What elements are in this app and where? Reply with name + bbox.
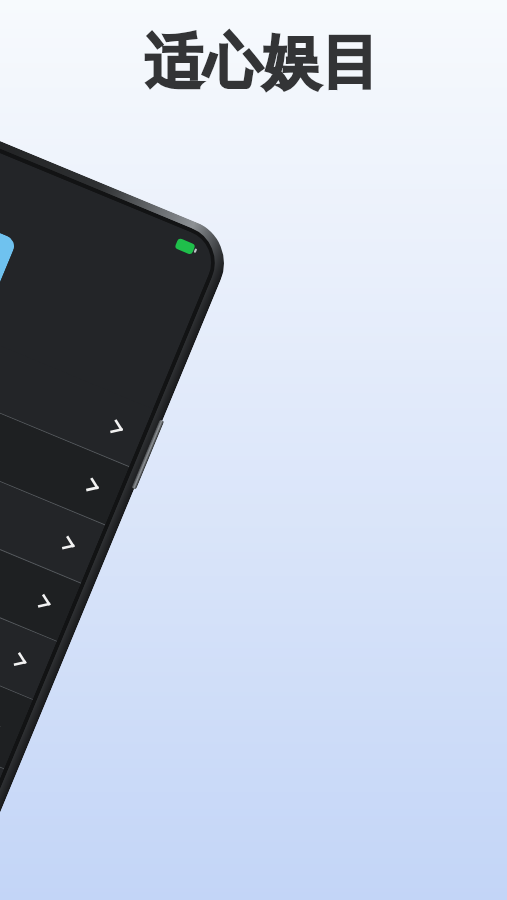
button[interactable]: 隐私设置 bbox=[0, 525, 57, 699]
staticText: 适心娱目 bbox=[144, 26, 380, 99]
button[interactable]: 深色模式 bbox=[0, 583, 33, 768]
other: Open bbox=[13, 650, 30, 671]
other: Open bbox=[37, 592, 54, 613]
other: Open bbox=[85, 476, 102, 496]
button[interactable]: 字体大小 bbox=[0, 350, 129, 524]
button[interactable]: 通知管理 bbox=[0, 467, 81, 641]
other: Power button bbox=[131, 419, 164, 490]
other: Open bbox=[61, 534, 78, 555]
button[interactable]: 阅读模式 bbox=[0, 408, 105, 583]
button[interactable]: 关于我们 bbox=[0, 652, 4, 827]
button[interactable]: Theme preview bbox=[0, 205, 17, 296]
button[interactable]: 显示设置 bbox=[0, 292, 153, 466]
other: Open bbox=[109, 417, 126, 438]
